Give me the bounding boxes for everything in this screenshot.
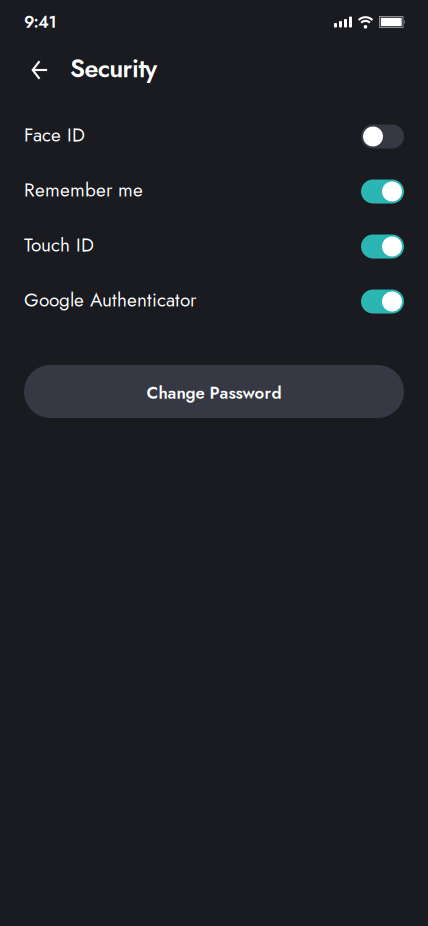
button[interactable]: Back	[22, 52, 58, 88]
button[interactable]: Change Password	[24, 365, 404, 418]
staticText: Google Authenticator	[24, 286, 196, 314]
button[interactable]: Google Authenticator	[361, 289, 404, 313]
staticText: Face ID	[24, 121, 85, 149]
button[interactable]: Face ID	[361, 124, 404, 148]
button[interactable]: Touch ID	[361, 234, 404, 258]
staticText: Remember me	[24, 176, 143, 204]
staticText: 9:41	[24, 10, 56, 34]
button[interactable]: Remember me	[361, 179, 404, 203]
staticText: Touch ID	[24, 231, 94, 259]
staticText: Security	[70, 50, 157, 87]
staticText: Change Password	[146, 381, 281, 405]
